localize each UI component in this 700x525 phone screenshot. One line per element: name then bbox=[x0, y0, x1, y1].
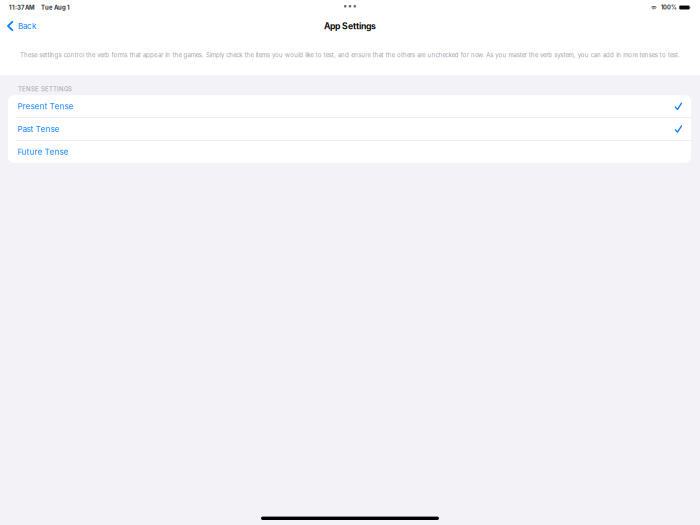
staticText: Tue Aug 1 bbox=[41, 4, 70, 11]
button[interactable]: Present Tense bbox=[8, 95, 691, 117]
button[interactable]: Back bbox=[0, 15, 44, 37]
staticText: TENSE SETTINGS bbox=[18, 85, 72, 93]
staticText: Back bbox=[18, 21, 36, 31]
staticText: App Settings bbox=[324, 21, 376, 31]
button[interactable]: Future Tense bbox=[8, 141, 691, 163]
button[interactable]: Multitasking options bbox=[329, 0, 371, 15]
staticText: These settings control the verb forms th… bbox=[20, 51, 680, 59]
staticText: Future Tense bbox=[17, 147, 68, 157]
button[interactable]: Past Tense bbox=[8, 118, 691, 140]
staticText: Present Tense bbox=[17, 101, 73, 111]
staticText: 11:37 AM bbox=[9, 4, 35, 11]
staticText: 100% bbox=[661, 4, 677, 11]
staticText: Past Tense bbox=[17, 124, 59, 134]
